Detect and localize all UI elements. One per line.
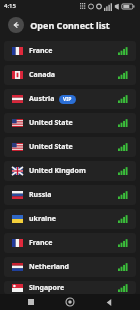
button[interactable]: United State	[4, 137, 136, 157]
staticText: Russia	[29, 190, 52, 200]
staticText: United State	[29, 118, 73, 128]
button[interactable]: United State	[4, 113, 136, 133]
button[interactable]: ukraine	[4, 209, 136, 229]
staticText: Open Connect list	[30, 19, 110, 31]
button[interactable]: Singapore	[4, 281, 136, 294]
button[interactable]: Back	[101, 294, 117, 310]
button[interactable]: Netherland	[4, 257, 136, 277]
staticText: Netherland	[29, 262, 70, 272]
button[interactable]: Austria	[4, 89, 136, 109]
button[interactable]: Home	[62, 294, 78, 310]
button[interactable]: France	[4, 41, 136, 61]
button[interactable]: Recents	[23, 294, 39, 310]
staticText: VIP	[63, 96, 72, 103]
staticText: ukraine	[29, 214, 56, 224]
button[interactable]: Canada	[4, 65, 136, 85]
button[interactable]: Russia	[4, 185, 136, 205]
button[interactable]: Back	[8, 17, 24, 33]
staticText: United Kingdom	[29, 166, 86, 176]
staticText: Singapore	[29, 283, 65, 293]
staticText: Canada	[29, 70, 56, 80]
staticText: France	[29, 238, 53, 248]
staticText: United State	[29, 142, 73, 152]
staticText: Austria	[29, 94, 55, 104]
button[interactable]: France	[4, 233, 136, 253]
staticText: France	[29, 46, 53, 56]
button[interactable]: United Kingdom	[4, 161, 136, 181]
staticText: 4:15	[4, 2, 16, 10]
